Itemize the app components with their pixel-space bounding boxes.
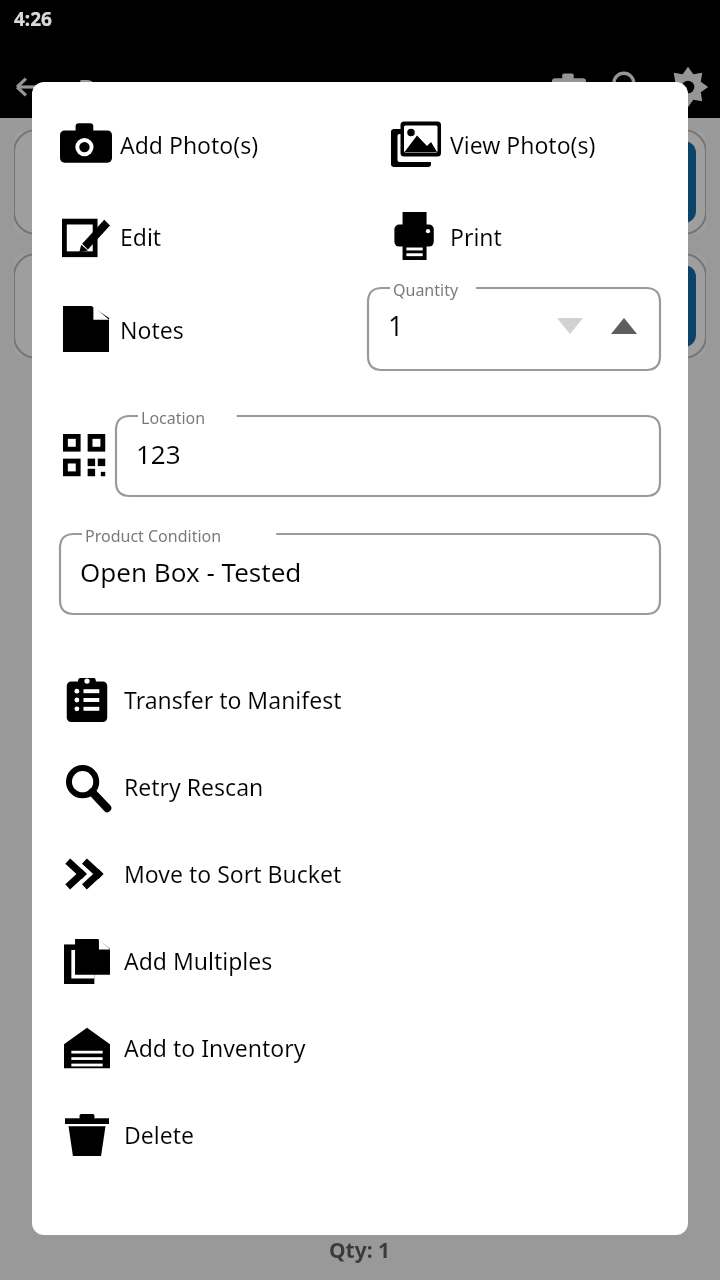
button[interactable]: Settings [656,56,720,118]
staticText: 123 [136,436,181,471]
staticText: View Photo(s) [450,129,596,160]
button[interactable]: Move to Sort Bucket [32,830,688,917]
button[interactable]: Print [360,198,688,274]
button[interactable]: Scan location [60,431,110,481]
button[interactable]: Edit [32,198,360,274]
button[interactable]: Camera [540,58,598,116]
staticText: Notes [120,314,184,345]
staticText: Location [141,407,206,429]
button[interactable]: Add Multiples [32,917,688,1004]
button[interactable]: View Photo(s) [360,106,688,182]
staticText: Move to Sort Bucket [124,858,342,889]
staticText: Delete [124,1119,194,1150]
button[interactable]: Search [598,58,656,116]
button[interactable]: Retry Rescan [32,743,688,830]
staticText: 1 [388,307,404,344]
button[interactable]: Increase quantity [602,304,646,348]
button[interactable]: Location [116,416,660,496]
staticText: Quantity [393,279,459,301]
staticText: Transfer to Manifest [124,684,342,715]
staticText: Open Box - Tested [80,554,302,589]
button[interactable]: Decrease quantity [548,304,592,348]
button[interactable] [14,254,706,358]
staticText: Qty: 1 [329,1236,391,1265]
button[interactable]: Notes [32,291,360,367]
button[interactable]: Add to Inventory [32,1004,688,1091]
staticText: 4:26 [14,6,52,32]
staticText: Print [450,221,502,252]
button[interactable]: Quantity [368,288,660,370]
button[interactable]: Product Condition [60,534,660,614]
staticText: Add Photo(s) [120,129,259,160]
button[interactable] [14,130,706,234]
staticText: Add Multiples [124,945,273,976]
button[interactable]: Back [0,59,56,115]
staticText: Retry Rescan [124,771,264,802]
staticText: Edit [120,221,162,252]
staticText: Product Condition [85,525,222,547]
button[interactable]: Delete [32,1091,688,1178]
staticText: Add to Inventory [124,1032,306,1063]
staticText: Demo [78,70,152,105]
button[interactable]: Transfer to Manifest [32,656,688,743]
button[interactable]: Add Photo(s) [32,106,360,182]
